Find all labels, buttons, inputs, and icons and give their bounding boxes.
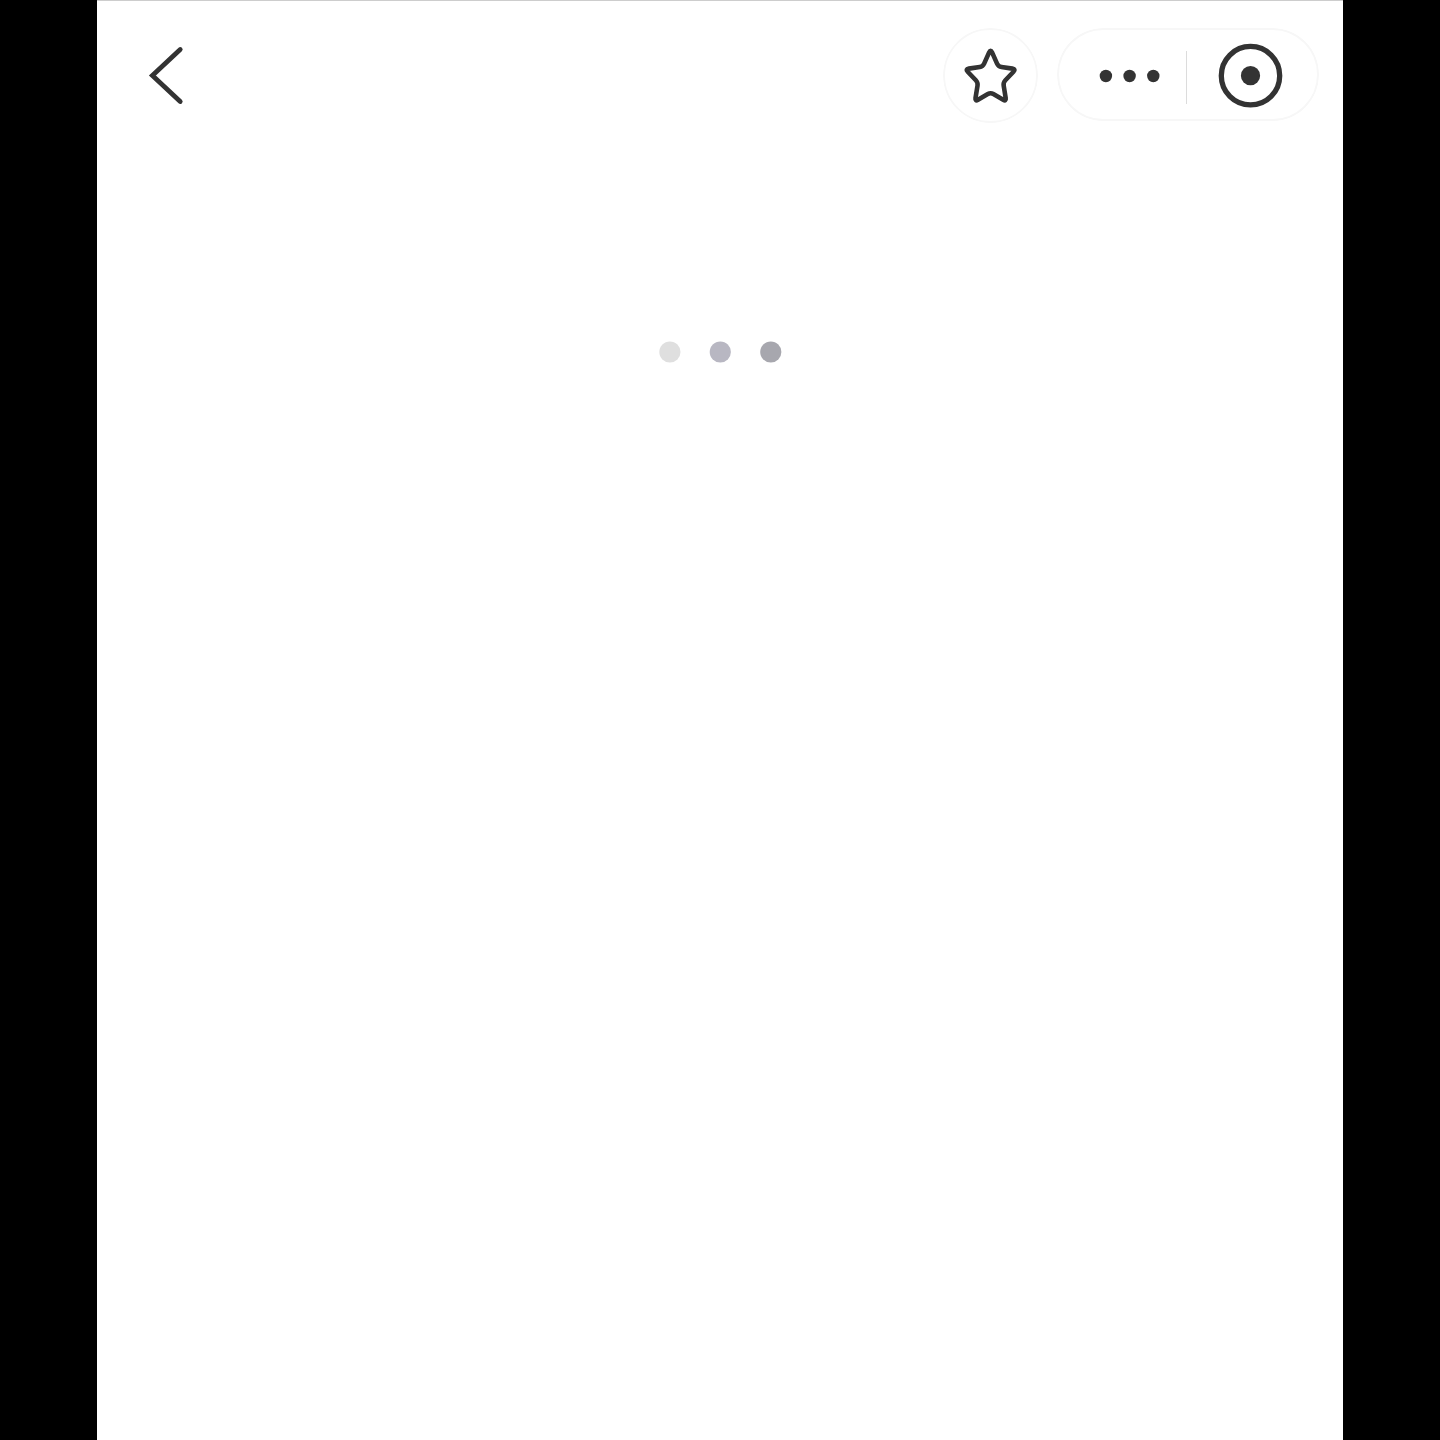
button[interactable]: Favorite: [943, 28, 1038, 123]
button[interactable]: Back: [120, 28, 215, 123]
button[interactable]: More options: [1057, 28, 1187, 121]
button[interactable]: Close mini program: [1188, 28, 1319, 121]
